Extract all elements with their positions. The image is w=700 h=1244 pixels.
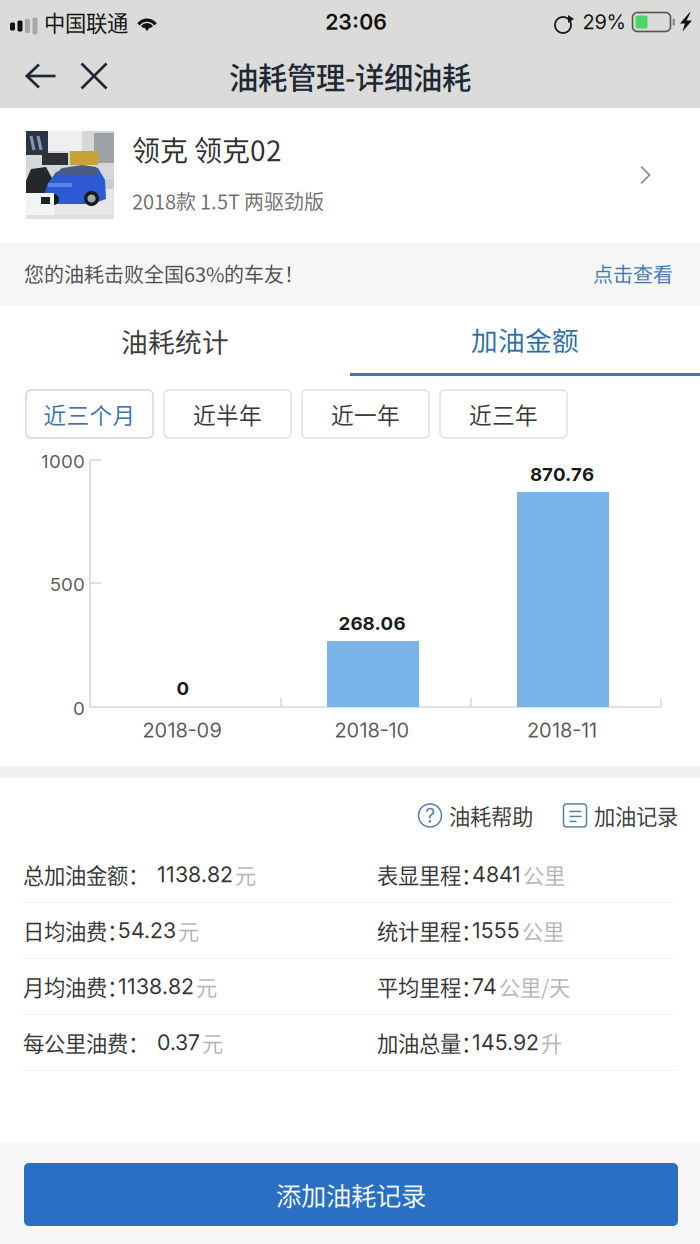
staticText: 中国联通 bbox=[44, 7, 128, 37]
staticText: 2018-11 bbox=[527, 718, 597, 742]
staticText: 加油记录 bbox=[594, 800, 678, 831]
staticText: ? bbox=[425, 803, 435, 827]
staticText: 您的油耗击败全国63%的车友！ bbox=[24, 259, 304, 288]
staticText: 月均油费： bbox=[23, 971, 128, 1002]
staticText: 加油金额 bbox=[471, 320, 579, 358]
staticText: 870.76 bbox=[530, 463, 594, 486]
staticText: 54.23 bbox=[118, 917, 176, 943]
staticText: 公里 bbox=[522, 915, 564, 946]
staticText: 日均油费： bbox=[23, 915, 128, 946]
staticText: 近一年 bbox=[331, 398, 400, 430]
staticText: 元 bbox=[202, 1027, 223, 1058]
button[interactable]: 添加油耗记录 bbox=[24, 1163, 678, 1226]
staticText: 点击查看 bbox=[593, 259, 673, 288]
button[interactable]: 返回 bbox=[14, 49, 68, 103]
staticText: 1138.82 bbox=[118, 973, 194, 999]
staticText: 0.37 bbox=[157, 1029, 200, 1055]
staticText: 268.06 bbox=[338, 612, 405, 635]
staticText: 加油总量： bbox=[377, 1027, 482, 1058]
button[interactable]: 领克 领克02 bbox=[0, 108, 700, 242]
button[interactable]: ? bbox=[418, 800, 533, 831]
staticText: 公里/天 bbox=[499, 971, 570, 1002]
button[interactable]: 近半年 bbox=[164, 390, 291, 438]
staticText: 1555 bbox=[472, 917, 520, 943]
staticText: 总加油金额： bbox=[23, 859, 149, 890]
staticText: 29% bbox=[582, 10, 625, 34]
button[interactable]: 关闭 bbox=[68, 49, 120, 103]
staticText: 2018-10 bbox=[334, 718, 409, 742]
button[interactable]: 加油金额 bbox=[350, 305, 700, 376]
staticText: 添加油耗记录 bbox=[276, 1176, 426, 1213]
staticText: 2018-09 bbox=[142, 718, 221, 742]
staticText: 元 bbox=[196, 971, 217, 1002]
button[interactable]: 近三个月 bbox=[26, 390, 153, 438]
staticText: 公里 bbox=[523, 859, 565, 890]
button[interactable]: 加油记录 bbox=[563, 800, 678, 831]
staticText: 元 bbox=[235, 859, 256, 890]
staticText: 油耗管理-详细油耗 bbox=[229, 55, 471, 97]
staticText: 500 bbox=[50, 573, 85, 596]
staticText: 元 bbox=[178, 915, 199, 946]
staticText: 油耗帮助 bbox=[449, 800, 533, 831]
button[interactable]: 油耗统计 bbox=[0, 305, 350, 376]
staticText: 0 bbox=[176, 677, 189, 700]
staticText: 23:06 bbox=[325, 9, 387, 35]
staticText: 近三年 bbox=[469, 398, 538, 430]
staticText: 表显里程： bbox=[377, 859, 482, 890]
staticText: 2018款 1.5T 两驱劲版 bbox=[132, 186, 324, 215]
staticText: 4841 bbox=[472, 861, 521, 887]
staticText: 每公里油费： bbox=[23, 1027, 149, 1058]
staticText: 1000 bbox=[41, 450, 85, 473]
staticText: 1138.82 bbox=[157, 861, 233, 887]
staticText: 0 bbox=[73, 697, 85, 720]
staticText: 近半年 bbox=[193, 398, 262, 430]
button[interactable]: 点击查看 bbox=[593, 259, 673, 288]
staticText: 74 bbox=[472, 973, 497, 999]
staticText: 近三个月 bbox=[43, 398, 135, 430]
button[interactable]: 近三年 bbox=[440, 390, 567, 438]
staticText: 油耗统计 bbox=[121, 321, 229, 360]
staticText: 领克 领克02 bbox=[132, 129, 282, 169]
button[interactable]: 近一年 bbox=[302, 390, 429, 438]
staticText: 升 bbox=[541, 1027, 562, 1058]
staticText: 统计里程： bbox=[377, 915, 482, 946]
staticText: 145.92 bbox=[472, 1029, 539, 1055]
staticText: 平均里程： bbox=[377, 971, 482, 1002]
